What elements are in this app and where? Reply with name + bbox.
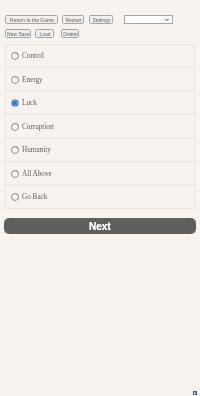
button[interactable]: Go Back [5, 185, 195, 209]
staticText: Settings [92, 17, 111, 23]
button[interactable]: Select save slot [124, 15, 173, 24]
staticText: Energy [22, 76, 43, 84]
button[interactable]: Return to the Game [5, 15, 58, 24]
staticText: Return to the Game [10, 17, 54, 23]
staticText: Luck [22, 99, 37, 107]
button[interactable]: Settings [89, 15, 113, 24]
button[interactable]: Restart [62, 15, 84, 24]
staticText: Humanity [22, 146, 51, 154]
staticText: New Save [7, 31, 30, 37]
staticText: Delete [63, 31, 78, 37]
button[interactable]: Next [4, 218, 196, 234]
button[interactable]: Load [35, 29, 54, 38]
staticText: Control [22, 52, 44, 60]
staticText: Load [39, 31, 51, 37]
button[interactable]: Corruption [5, 115, 195, 139]
button[interactable]: Humanity [5, 138, 195, 162]
staticText: Restart [65, 17, 82, 23]
staticText: f [194, 391, 196, 395]
button[interactable]: Luck [5, 91, 195, 115]
button[interactable]: Delete [61, 29, 79, 38]
button[interactable]: Control [5, 44, 195, 68]
staticText: Next [89, 221, 111, 232]
staticText: Corruption [22, 123, 54, 131]
staticText: Go Back [22, 193, 48, 201]
button[interactable]: Energy [5, 68, 195, 92]
staticText: All Above [22, 170, 52, 178]
button[interactable]: New Save [5, 29, 31, 38]
button[interactable]: Share on Facebook [193, 391, 197, 395]
button[interactable]: All Above [5, 162, 195, 186]
